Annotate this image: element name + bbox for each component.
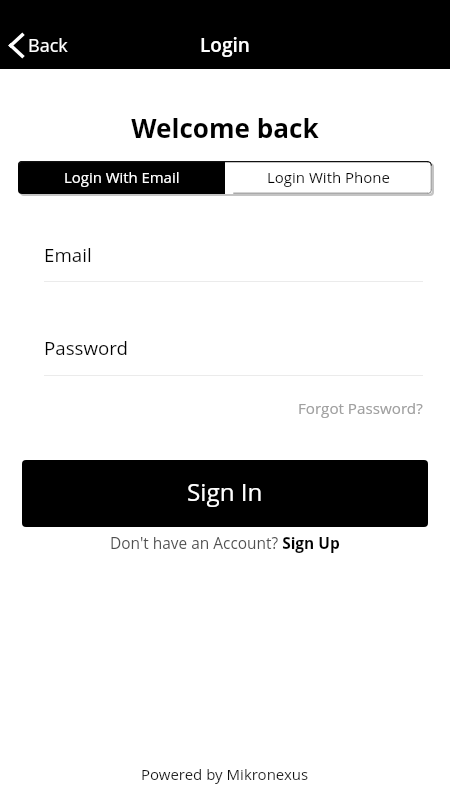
button[interactable]: Login With Phone bbox=[225, 161, 432, 194]
staticText: Email bbox=[44, 242, 92, 267]
staticText: Login bbox=[200, 32, 250, 58]
button[interactable]: Forgot Password? bbox=[298, 398, 423, 419]
staticText: Welcome back bbox=[0, 110, 450, 146]
staticText: Login With Email bbox=[64, 167, 180, 187]
staticText: Sign In bbox=[187, 475, 263, 508]
button[interactable]: Sign In bbox=[22, 460, 428, 527]
button[interactable]: Login With Email bbox=[18, 161, 225, 194]
staticText: Password bbox=[44, 335, 129, 360]
button[interactable]: Don't have an Account? Sign Up bbox=[110, 532, 340, 553]
button[interactable]: Back bbox=[6, 31, 71, 60]
staticText: Powered by Mikronexus bbox=[141, 764, 309, 784]
staticText: Login With Phone bbox=[267, 167, 390, 187]
staticText: Back bbox=[28, 33, 68, 58]
